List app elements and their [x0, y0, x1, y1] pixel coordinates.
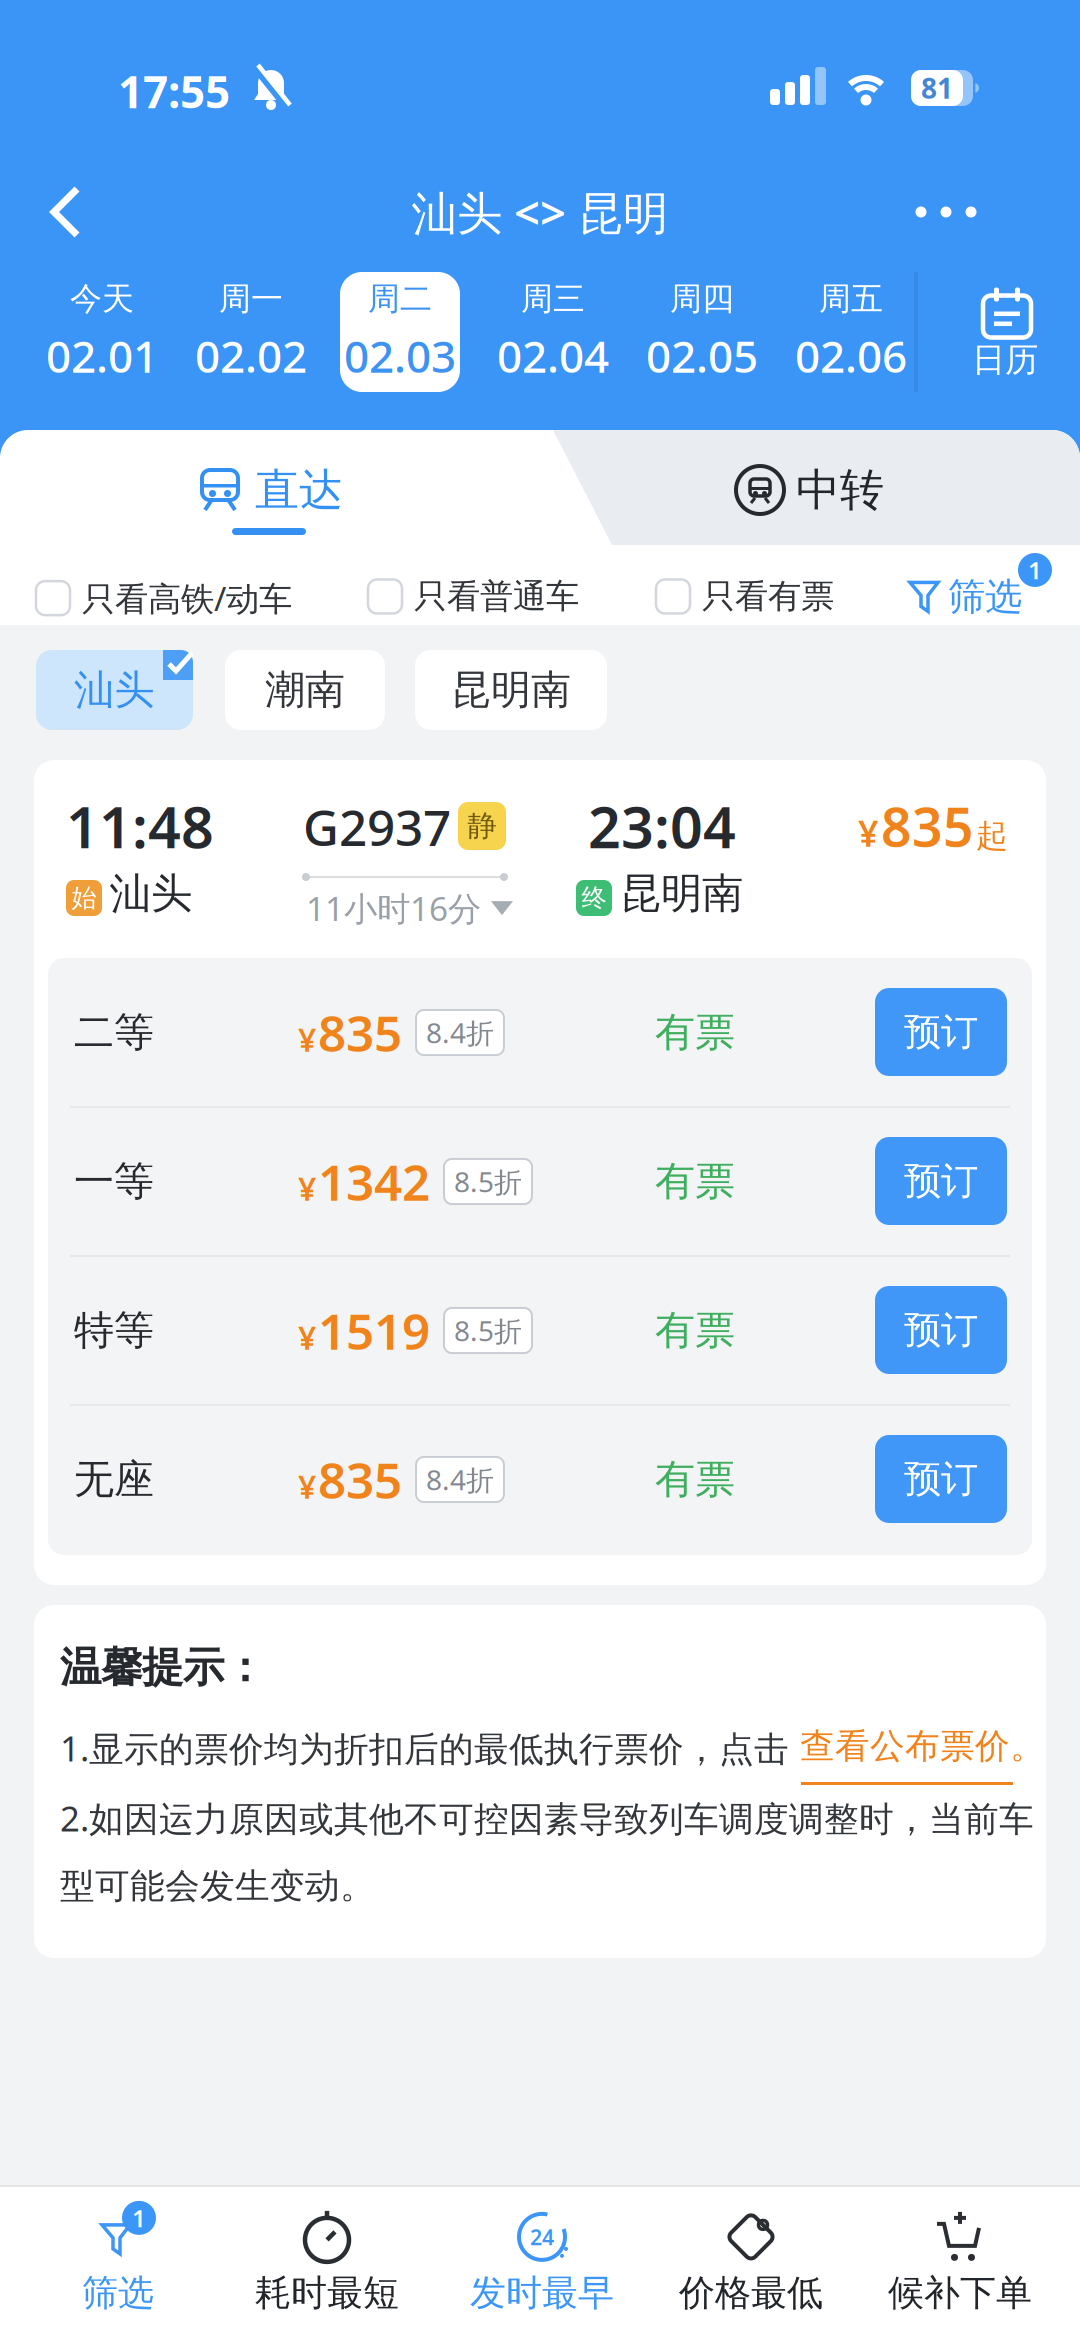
button[interactable]: 预订: [875, 988, 1007, 1076]
staticText: 有票: [655, 1008, 735, 1057]
staticText: 日历: [972, 339, 1038, 380]
staticText: 835: [318, 1000, 402, 1065]
button[interactable]: 预订: [875, 1435, 1007, 1523]
staticText: G2937: [303, 794, 451, 859]
staticText: 潮南: [265, 665, 345, 714]
button[interactable]: 周三: [493, 272, 613, 392]
staticText: 预订: [904, 1009, 978, 1055]
staticText: ¥: [298, 1018, 316, 1060]
button[interactable]: 预订: [875, 1137, 1007, 1225]
button[interactable]: 中转: [736, 463, 884, 517]
staticText: 中转: [796, 463, 884, 517]
button[interactable]: 预订: [875, 1286, 1007, 1374]
staticText: 8.4折: [426, 1014, 494, 1051]
staticText: 1: [1028, 554, 1042, 586]
button[interactable]: 周二: [340, 272, 460, 392]
button[interactable]: 只看有票: [656, 576, 834, 617]
staticText: 周四: [670, 279, 734, 318]
staticText: 候补下单: [888, 2271, 1032, 2315]
staticText: 终: [581, 882, 606, 913]
button[interactable]: 周四: [642, 272, 762, 392]
staticText: 835: [318, 1447, 402, 1512]
staticText: 发时最早: [470, 2271, 614, 2315]
staticText: 耗时最短: [255, 2271, 399, 2315]
staticText: 8.5折: [454, 1163, 522, 1200]
staticText: ¥: [298, 1465, 316, 1507]
button[interactable]: 直达: [197, 463, 343, 517]
button[interactable]: 24: [470, 2209, 614, 2315]
staticText: 23:04: [588, 788, 736, 864]
staticText: 昆明南: [451, 665, 571, 714]
staticText: 02.02: [195, 326, 307, 385]
staticText: 1519: [318, 1298, 430, 1363]
staticText: 02.05: [646, 326, 758, 385]
staticText: 02.04: [497, 326, 609, 385]
button[interactable]: 1: [82, 2209, 154, 2315]
button[interactable]: 候补下单: [888, 2209, 1032, 2315]
staticText: 特等: [74, 1306, 154, 1355]
staticText: 8.4折: [426, 1461, 494, 1498]
staticText: 二等: [74, 1008, 154, 1057]
button[interactable]: 筛选: [908, 574, 1022, 620]
staticText: 静: [467, 808, 496, 844]
staticText: 预订: [904, 1158, 978, 1204]
button[interactable]: 周一: [191, 272, 311, 392]
staticText: 835: [881, 791, 974, 861]
staticText: 24: [530, 2223, 554, 2251]
staticText: 查看公布票价。: [800, 1725, 1045, 1768]
staticText: 只看高铁/动车: [82, 576, 292, 620]
button[interactable]: 只看普通车: [368, 576, 579, 617]
button[interactable]: 潮南: [225, 650, 385, 730]
button[interactable]: 汕头: [36, 650, 193, 730]
button[interactable]: 日历: [972, 279, 1038, 380]
staticText: 02.01: [46, 326, 158, 385]
staticText: 17:55: [118, 62, 230, 120]
staticText: 02.03: [344, 326, 456, 385]
button[interactable]: Back: [36, 182, 96, 242]
staticText: 始: [71, 882, 96, 913]
staticText: 只看有票: [702, 576, 834, 617]
button[interactable]: 周五: [791, 272, 911, 392]
staticText: 汕头: [110, 868, 192, 919]
staticText: 今天: [70, 279, 134, 318]
staticText: 一等: [74, 1157, 154, 1206]
staticText: 81: [921, 69, 953, 107]
staticText: 价格最低: [679, 2271, 823, 2315]
staticText: 只看普通车: [414, 576, 579, 617]
staticText: 1342: [318, 1149, 430, 1214]
staticText: 温馨提示：: [60, 1642, 265, 1693]
staticText: 直达: [255, 463, 343, 517]
staticText: 汕头 <> 昆明: [412, 182, 668, 242]
staticText: 汕头: [74, 665, 154, 714]
staticText: ¥: [298, 1167, 316, 1209]
staticText: 周五: [819, 279, 883, 318]
staticText: 型可能会发生变动。: [60, 1865, 375, 1908]
staticText: 周一: [219, 279, 283, 318]
staticText: 筛选: [82, 2271, 154, 2315]
staticText: 有票: [655, 1306, 735, 1355]
staticText: 周二: [368, 279, 432, 318]
staticText: 预订: [904, 1456, 978, 1502]
staticText: 有票: [655, 1157, 735, 1206]
staticText: 1: [132, 2202, 146, 2234]
button[interactable]: 11小时16分: [306, 886, 513, 930]
staticText: 02.06: [795, 326, 907, 385]
staticText: 11小时16分: [306, 886, 481, 930]
staticText: 无座: [74, 1455, 154, 1504]
button[interactable]: 昆明南: [415, 650, 607, 730]
staticText: ¥: [298, 1316, 316, 1358]
staticText: 11:48: [66, 788, 214, 864]
staticText: 2.如因运力原因或其他不可控因素导致列车调度调整时，当前车: [60, 1795, 1034, 1841]
button[interactable]: 今天: [42, 272, 162, 392]
button[interactable]: More: [906, 192, 986, 232]
staticText: 起: [976, 816, 1008, 856]
staticText: 昆明南: [620, 868, 743, 919]
staticText: 筛选: [948, 574, 1022, 620]
button[interactable]: 耗时最短: [255, 2209, 399, 2315]
button[interactable]: 价格最低: [679, 2209, 823, 2315]
staticText: 周三: [521, 279, 585, 318]
button[interactable]: 查看公布票价。: [800, 1725, 1045, 1768]
staticText: 有票: [655, 1455, 735, 1504]
staticText: 1.显示的票价均为折扣后的最低执行票价，点击: [60, 1725, 789, 1771]
button[interactable]: 只看高铁/动车: [36, 576, 292, 620]
